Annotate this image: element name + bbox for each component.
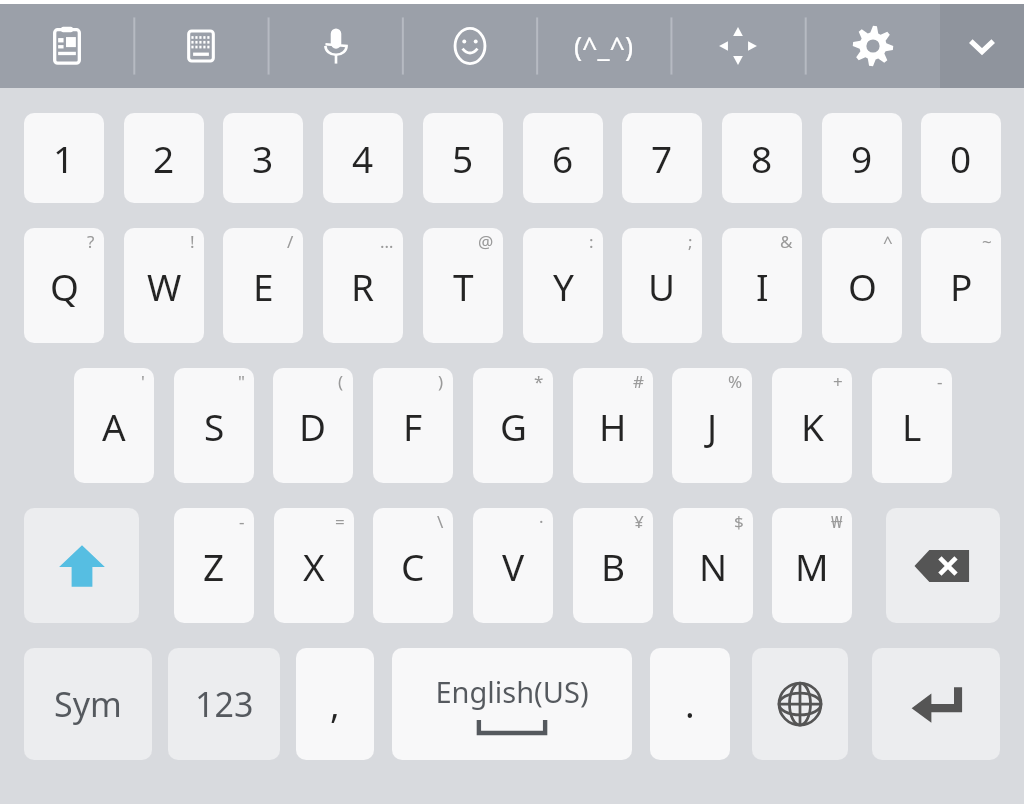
staticText: T bbox=[453, 261, 474, 311]
staticText: 8 bbox=[751, 133, 773, 183]
button[interactable]: J bbox=[672, 368, 752, 483]
button[interactable]: Sym bbox=[24, 648, 152, 760]
staticText: + bbox=[833, 370, 843, 393]
button[interactable]: Emoticons bbox=[537, 4, 671, 88]
staticText: # bbox=[633, 370, 644, 393]
staticText: ₩ bbox=[831, 510, 843, 533]
button[interactable]: Emoji bbox=[403, 4, 537, 88]
button[interactable]: F bbox=[373, 368, 453, 483]
button[interactable]: T bbox=[423, 228, 503, 343]
staticText: 6 bbox=[552, 133, 574, 183]
button[interactable]: . bbox=[650, 648, 730, 760]
staticText: ¥ bbox=[634, 510, 644, 533]
staticText: L bbox=[902, 401, 922, 451]
staticText: C bbox=[401, 541, 425, 591]
staticText: … bbox=[380, 230, 394, 253]
staticText: A bbox=[102, 401, 126, 451]
button[interactable]: A bbox=[74, 368, 154, 483]
staticText: ^ bbox=[883, 230, 893, 253]
button[interactable]: U bbox=[622, 228, 702, 343]
staticText: Sym bbox=[54, 681, 122, 727]
button[interactable]: Shift bbox=[24, 508, 139, 623]
staticText: (^_^) bbox=[574, 28, 634, 65]
staticText: 7 bbox=[651, 133, 673, 183]
button[interactable]: 123 bbox=[168, 648, 280, 760]
staticText: D bbox=[299, 401, 327, 451]
staticText: ; bbox=[688, 230, 693, 253]
button[interactable]: S bbox=[174, 368, 254, 483]
staticText: " bbox=[238, 370, 245, 393]
button[interactable]: N bbox=[673, 508, 753, 623]
staticText: 1 bbox=[53, 133, 75, 183]
button[interactable]: Y bbox=[523, 228, 603, 343]
staticText: 5 bbox=[452, 133, 474, 183]
button[interactable]: 8 bbox=[722, 113, 802, 203]
button[interactable]: B bbox=[573, 508, 653, 623]
staticText: ? bbox=[87, 230, 95, 253]
staticText: ) bbox=[438, 370, 444, 393]
button[interactable]: G bbox=[473, 368, 553, 483]
button[interactable]: O bbox=[822, 228, 902, 343]
button[interactable]: Clipboard bbox=[0, 4, 134, 88]
staticText: F bbox=[403, 401, 423, 451]
button[interactable]: Z bbox=[174, 508, 254, 623]
staticText: @ bbox=[478, 230, 494, 253]
button[interactable]: 6 bbox=[523, 113, 603, 203]
button[interactable]: Settings bbox=[806, 4, 940, 88]
staticText: - bbox=[239, 510, 245, 533]
button[interactable]: D bbox=[273, 368, 353, 483]
staticText: G bbox=[500, 401, 527, 451]
button[interactable]: X bbox=[274, 508, 354, 623]
staticText: W bbox=[147, 261, 182, 311]
staticText: Z bbox=[203, 541, 225, 591]
staticText: . bbox=[685, 680, 695, 729]
button[interactable]: English(US) bbox=[392, 648, 632, 760]
button[interactable]: 1 bbox=[24, 113, 104, 203]
staticText: = bbox=[335, 510, 345, 533]
button[interactable]: C bbox=[373, 508, 453, 623]
staticText: , bbox=[330, 680, 340, 729]
staticText: X bbox=[303, 541, 325, 591]
staticText: - bbox=[937, 370, 943, 393]
staticText: K bbox=[801, 401, 824, 451]
button[interactable]: Enter bbox=[872, 648, 1000, 760]
button[interactable]: Cursor control bbox=[671, 4, 805, 88]
button[interactable]: 9 bbox=[822, 113, 902, 203]
button[interactable]: M bbox=[772, 508, 852, 623]
button[interactable]: K bbox=[772, 368, 852, 483]
button[interactable]: H bbox=[573, 368, 653, 483]
staticText: $ bbox=[734, 510, 744, 533]
button[interactable]: Q bbox=[24, 228, 104, 343]
button[interactable]: 5 bbox=[423, 113, 503, 203]
button[interactable]: 4 bbox=[323, 113, 403, 203]
button[interactable]: Keyboard layout bbox=[134, 4, 268, 88]
button[interactable]: 0 bbox=[921, 113, 1001, 203]
button[interactable]: 7 bbox=[622, 113, 702, 203]
button[interactable]: 3 bbox=[223, 113, 303, 203]
button[interactable]: Change language bbox=[752, 648, 848, 760]
button[interactable]: V bbox=[473, 508, 553, 623]
staticText: / bbox=[287, 230, 294, 253]
staticText: & bbox=[780, 230, 793, 253]
staticText: ' bbox=[141, 370, 145, 393]
button[interactable]: P bbox=[921, 228, 1001, 343]
button[interactable]: W bbox=[124, 228, 204, 343]
button[interactable]: R bbox=[323, 228, 403, 343]
button[interactable]: L bbox=[872, 368, 952, 483]
button[interactable]: , bbox=[296, 648, 374, 760]
staticText: H bbox=[599, 401, 627, 451]
button[interactable]: E bbox=[223, 228, 303, 343]
staticText: 3 bbox=[252, 133, 274, 183]
staticText: V bbox=[502, 541, 525, 591]
staticText: E bbox=[253, 261, 274, 311]
button[interactable]: Backspace bbox=[886, 508, 1000, 623]
staticText: B bbox=[601, 541, 626, 591]
button[interactable]: I bbox=[722, 228, 802, 343]
button[interactable]: Voice input bbox=[269, 4, 403, 88]
button[interactable]: Hide keyboard bbox=[940, 4, 1024, 88]
staticText: 2 bbox=[153, 133, 175, 183]
staticText: O bbox=[848, 261, 877, 311]
staticText: Y bbox=[553, 261, 574, 311]
staticText: U bbox=[648, 261, 676, 311]
button[interactable]: 2 bbox=[124, 113, 204, 203]
